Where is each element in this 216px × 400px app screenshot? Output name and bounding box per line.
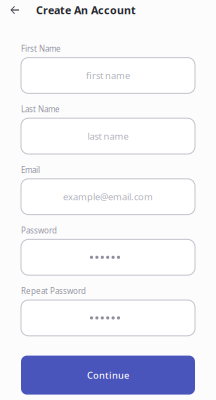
staticText: Last Name [21, 104, 60, 114]
staticText: First Name [21, 43, 61, 54]
button[interactable]: Password [21, 239, 195, 275]
button[interactable]: Back [3, 0, 26, 20]
staticText: Repeat Password [21, 286, 86, 296]
staticText: Create An Account [36, 3, 136, 17]
button[interactable]: Last Name [21, 118, 195, 154]
button[interactable]: Continue [21, 356, 195, 395]
button[interactable]: Repeat Password [21, 300, 195, 336]
staticText: last name [87, 130, 128, 142]
staticText: first name [86, 69, 130, 82]
staticText: Email [21, 164, 40, 175]
staticText: example@email.com [63, 190, 153, 203]
staticText: Password [21, 225, 57, 236]
button[interactable]: Email [21, 179, 195, 215]
button[interactable]: First Name [21, 58, 195, 93]
staticText: Continue [87, 369, 129, 381]
